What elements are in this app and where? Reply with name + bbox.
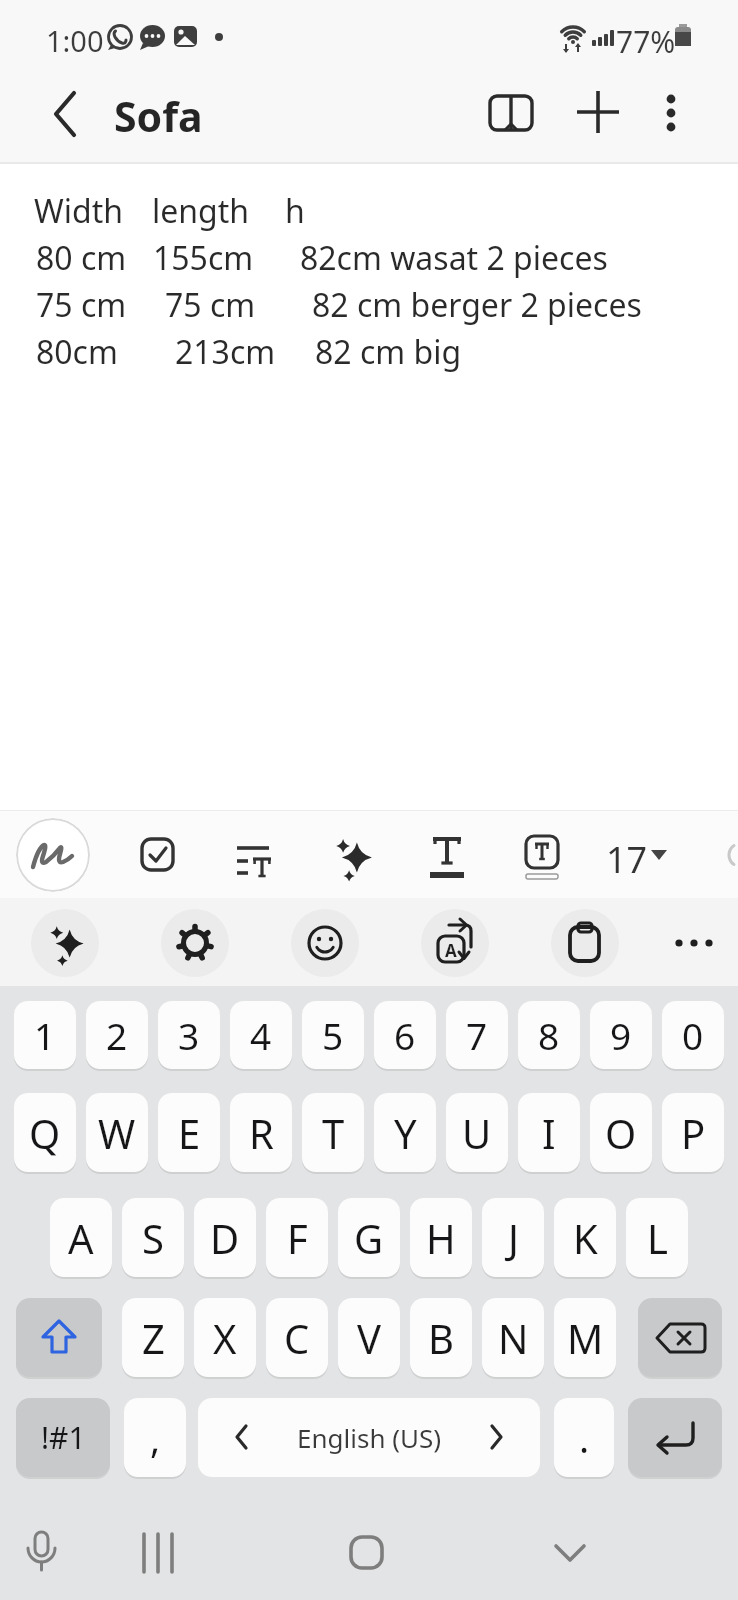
staticText: P [681,1106,706,1160]
button[interactable]: 7 [446,1001,508,1069]
button[interactable] [598,820,682,888]
staticText: 213cm [175,330,276,374]
button[interactable] [628,1398,722,1477]
staticText: L [647,1211,668,1265]
staticText: S [142,1211,164,1265]
button[interactable]: O [590,1093,652,1172]
button[interactable]: J [482,1198,544,1277]
button[interactable]: R [230,1093,292,1172]
button[interactable]: T [302,1093,364,1172]
button[interactable] [40,88,90,140]
staticText: 17 [606,835,648,884]
button[interactable] [31,909,99,977]
button[interactable]: L [626,1198,688,1277]
button[interactable]: W [86,1093,148,1172]
button[interactable] [16,1298,102,1377]
staticText: 82 cm berger 2 pieces [312,283,642,327]
button[interactable] [638,1298,722,1377]
button[interactable]: M [554,1298,616,1377]
staticText: E [178,1106,201,1160]
button[interactable]: , [124,1398,186,1477]
button[interactable]: 5 [302,1001,364,1069]
button[interactable]: S [122,1198,184,1277]
button[interactable] [653,92,689,136]
button[interactable] [666,915,722,971]
button[interactable]: English (US) [198,1398,540,1477]
button[interactable]: C [266,1298,328,1377]
button[interactable]: Q [14,1093,76,1172]
button[interactable]: 8 [518,1001,580,1069]
button[interactable]: K [554,1198,616,1277]
button[interactable]: 2 [86,1001,148,1069]
button[interactable]: 1 [14,1001,76,1069]
staticText: K [573,1211,598,1265]
button[interactable]: X [194,1298,256,1377]
button[interactable] [419,827,475,883]
staticText: B [428,1311,454,1365]
button[interactable]: B [410,1298,472,1377]
button[interactable] [548,1536,594,1572]
staticText: N [498,1311,529,1365]
button[interactable] [18,1528,66,1580]
staticText: Y [394,1106,417,1160]
staticText: H [426,1211,456,1265]
button[interactable]: I [518,1093,580,1172]
button[interactable] [161,909,229,977]
button[interactable] [514,827,570,883]
staticText: F [287,1211,308,1265]
staticText: 75 cm [36,283,127,327]
button[interactable]: V [338,1298,400,1377]
button[interactable]: A [421,909,489,977]
staticText: Q [29,1106,61,1160]
button[interactable]: Z [122,1298,184,1377]
staticText: 3 [178,1010,200,1060]
button[interactable] [129,827,185,883]
staticText: 1 [34,1010,56,1060]
button[interactable]: P [662,1093,724,1172]
button[interactable] [575,89,621,135]
button[interactable] [487,93,535,137]
button[interactable]: !#1 [16,1398,110,1477]
staticText: 8 [538,1010,560,1060]
button[interactable]: D [194,1198,256,1277]
staticText: Z [142,1311,165,1365]
staticText: I [542,1106,556,1160]
button[interactable]: H [410,1198,472,1277]
button[interactable] [134,1530,182,1576]
button[interactable]: . [554,1398,614,1477]
button[interactable]: 9 [590,1001,652,1069]
staticText: 4 [250,1010,272,1060]
button[interactable] [291,909,359,977]
staticText: J [508,1211,519,1265]
button[interactable] [322,826,382,886]
button[interactable]: E [158,1093,220,1172]
button[interactable] [348,1534,388,1574]
staticText: length [152,189,250,233]
button[interactable]: F [266,1198,328,1277]
staticText: 5 [322,1010,344,1060]
staticText: 2 [106,1010,128,1060]
staticText: 1:00 [46,21,104,60]
staticText: A [445,939,457,962]
staticText: 9 [610,1010,632,1060]
staticText: 6 [394,1010,416,1060]
button[interactable]: 3 [158,1001,220,1069]
button[interactable]: 6 [374,1001,436,1069]
staticText: 0 [682,1010,704,1060]
button[interactable]: Y [374,1093,436,1172]
staticText: English (US) [297,1420,442,1455]
button[interactable]: U [446,1093,508,1172]
staticText: 75 cm [165,283,256,327]
staticText: D [210,1211,240,1265]
staticText: , [150,1412,161,1464]
button[interactable] [551,909,619,977]
button[interactable]: 0 [662,1001,724,1069]
staticText: C [284,1311,310,1365]
button[interactable] [225,827,281,883]
button[interactable]: N [482,1298,544,1377]
button[interactable] [16,818,90,892]
staticText: 80 cm [36,236,127,280]
button[interactable]: A [50,1198,112,1277]
button[interactable]: 4 [230,1001,292,1069]
button[interactable]: G [338,1198,400,1277]
